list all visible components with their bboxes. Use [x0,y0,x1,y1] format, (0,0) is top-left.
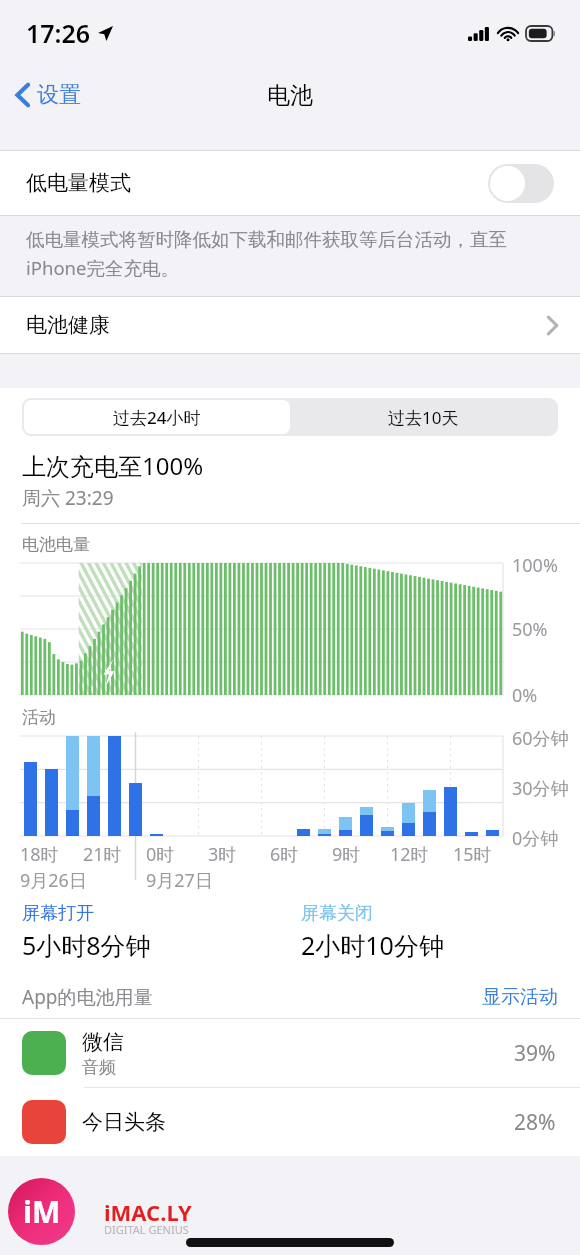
staticText: 12时 [390,842,429,867]
staticText: 60分钟 [512,726,569,751]
staticText: 39% [514,1039,556,1068]
staticText: 电池电量 [22,534,90,555]
staticText: 0时 [146,842,175,867]
staticText: 过去24小时 [113,406,201,429]
staticText: 2小时10分钟 [301,928,444,962]
staticText: 活动 [22,707,56,728]
button[interactable]: 电池健康 [0,297,580,353]
staticText: 设置 [37,81,81,109]
staticText: App的电池用量 [22,984,153,1010]
button[interactable]: 过去10天 [290,400,556,434]
staticText: 18时 [20,842,59,867]
staticText: 6时 [270,842,299,867]
staticText: 今日头条 [82,1109,166,1135]
staticText: 9月26日 [20,868,87,893]
staticText: iM [23,1191,61,1232]
staticText: 低电量模式 [26,170,131,196]
staticText: 低电量模式将暂时降低如下载和邮件获取等后台活动，直至 [26,228,507,251]
button[interactable]: 过去24小时 [24,400,290,434]
staticText: iMAC.LY [104,1197,192,1227]
staticText: 28% [514,1108,556,1137]
staticText: 15时 [453,842,492,867]
staticText: 过去10天 [388,406,459,429]
staticText: 30分钟 [512,776,569,801]
staticText: 50% [512,617,548,642]
staticText: 3时 [208,842,237,867]
staticText: DIGITAL GENIUS [104,1222,189,1237]
button[interactable]: 显示活动 [482,985,558,1009]
staticText: 9时 [332,842,361,867]
staticText: 显示活动 [482,985,558,1009]
button[interactable]: 低电量模式开关 [488,164,554,203]
staticText: 上次充电至100% [22,449,204,482]
staticText: 9月27日 [146,868,213,893]
staticText: iPhone完全充电。 [26,255,179,280]
staticText: 0% [512,683,538,708]
staticText: 21时 [83,842,122,867]
button[interactable]: 设置 [0,75,95,115]
staticText: 电池健康 [26,312,110,338]
staticText: 屏幕打开 [22,902,94,925]
staticText: 5小时8分钟 [22,928,151,962]
staticText: 微信 [82,1029,124,1055]
button[interactable]: 今日头条 [0,1088,580,1156]
staticText: 音频 [82,1057,116,1078]
staticText: 100% [512,553,558,578]
staticText: 0分钟 [512,826,559,851]
staticText: 周六 23:29 [22,485,114,511]
staticText: 电池 [267,81,313,110]
button[interactable]: 微信 [0,1019,580,1087]
staticText: 屏幕关闭 [301,902,373,925]
button[interactable]: 低电量模式 [0,151,580,215]
staticText: 17:26 [26,16,91,50]
